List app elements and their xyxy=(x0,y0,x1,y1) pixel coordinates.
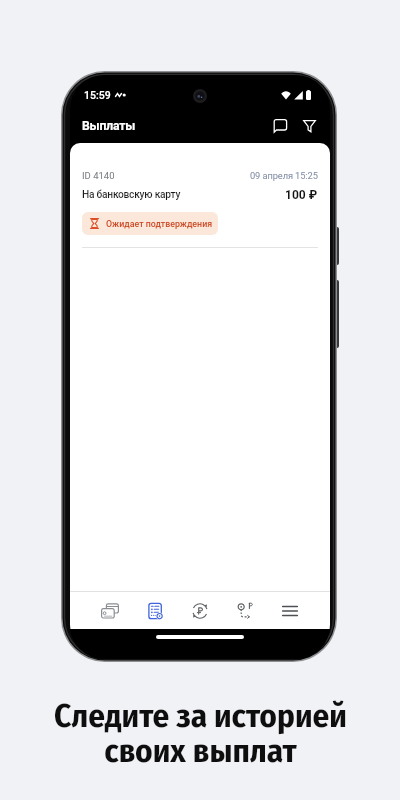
staticText: На банковскую карту xyxy=(82,189,181,201)
button[interactable]: Ожидает подтверждения xyxy=(82,212,218,235)
button[interactable] xyxy=(267,113,293,139)
staticText: своих выплат xyxy=(104,731,297,771)
staticText: Следите за историей xyxy=(54,696,347,736)
button[interactable] xyxy=(177,592,222,629)
staticText: 15:59 xyxy=(84,89,111,101)
staticText: 100 ₽ xyxy=(285,188,318,202)
button[interactable] xyxy=(296,113,322,139)
button[interactable] xyxy=(222,592,267,629)
button[interactable]: ID 4140 xyxy=(82,143,318,247)
button[interactable] xyxy=(88,592,132,629)
button[interactable] xyxy=(267,592,312,629)
staticText: 09 апреля 15:25 xyxy=(250,170,318,181)
button[interactable] xyxy=(132,592,177,629)
staticText: Ожидает подтверждения xyxy=(106,219,213,229)
staticText: ID 4140 xyxy=(82,170,115,181)
staticText: Выплаты xyxy=(82,119,136,133)
